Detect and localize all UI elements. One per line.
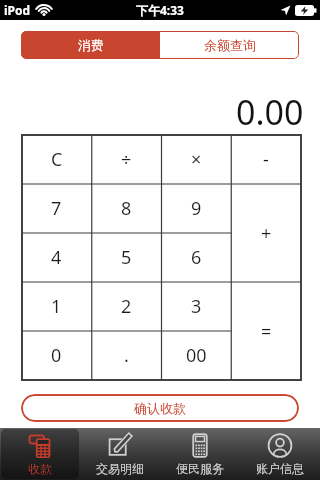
button[interactable]: 账户信息 <box>241 429 319 479</box>
staticText: 4 <box>51 245 62 270</box>
button[interactable]: + <box>231 184 301 282</box>
staticText: 00 <box>186 343 207 368</box>
staticText: 收款 <box>28 461 52 476</box>
button[interactable]: 6 <box>161 233 231 282</box>
button[interactable]: . <box>91 331 161 380</box>
staticText: 3 <box>191 294 202 319</box>
button[interactable]: 2 <box>91 282 161 331</box>
button[interactable]: - <box>231 135 301 184</box>
button[interactable]: 余额查询 <box>160 31 299 59</box>
button[interactable]: 交易明细 <box>81 429 159 479</box>
staticText: 7 <box>51 196 62 221</box>
staticText: 账户信息 <box>256 461 304 476</box>
button[interactable]: 收款 <box>1 429 79 479</box>
staticText: + <box>261 221 272 246</box>
staticText: C <box>51 147 63 172</box>
staticText: 9 <box>191 196 202 221</box>
button[interactable]: 9 <box>161 184 231 233</box>
button[interactable]: 8 <box>91 184 161 233</box>
staticText: 余额查询 <box>204 37 256 53</box>
button[interactable]: 0 <box>22 331 91 380</box>
staticText: 0 <box>51 343 62 368</box>
staticText: = <box>261 319 272 344</box>
staticText: 下午4:33 <box>136 2 184 18</box>
button[interactable]: 7 <box>22 184 91 233</box>
button[interactable]: 00 <box>161 331 231 380</box>
button[interactable]: ÷ <box>91 135 161 184</box>
staticText: 消费 <box>78 37 104 53</box>
staticText: 0.00 <box>236 89 304 135</box>
button[interactable]: 确认收款 <box>21 394 299 422</box>
button[interactable]: 4 <box>22 233 91 282</box>
button[interactable]: 消费 <box>21 31 160 59</box>
staticText: . <box>124 343 129 368</box>
staticText: 交易明细 <box>96 461 144 476</box>
button[interactable]: 5 <box>91 233 161 282</box>
staticText: 便民服务 <box>176 461 224 476</box>
button[interactable]: = <box>231 282 301 380</box>
staticText: - <box>263 147 269 172</box>
button[interactable]: 1 <box>22 282 91 331</box>
staticText: 确认收款 <box>134 400 186 416</box>
staticText: 2 <box>121 294 132 319</box>
staticText: 8 <box>121 196 132 221</box>
staticText: iPod <box>4 2 31 18</box>
staticText: ÷ <box>121 147 132 172</box>
staticText: 5 <box>121 245 132 270</box>
button[interactable]: 3 <box>161 282 231 331</box>
staticText: × <box>191 147 202 172</box>
button[interactable]: 便民服务 <box>161 429 239 479</box>
button[interactable]: × <box>161 135 231 184</box>
button[interactable]: C <box>22 135 91 184</box>
staticText: 6 <box>191 245 202 270</box>
staticText: 1 <box>51 294 62 319</box>
